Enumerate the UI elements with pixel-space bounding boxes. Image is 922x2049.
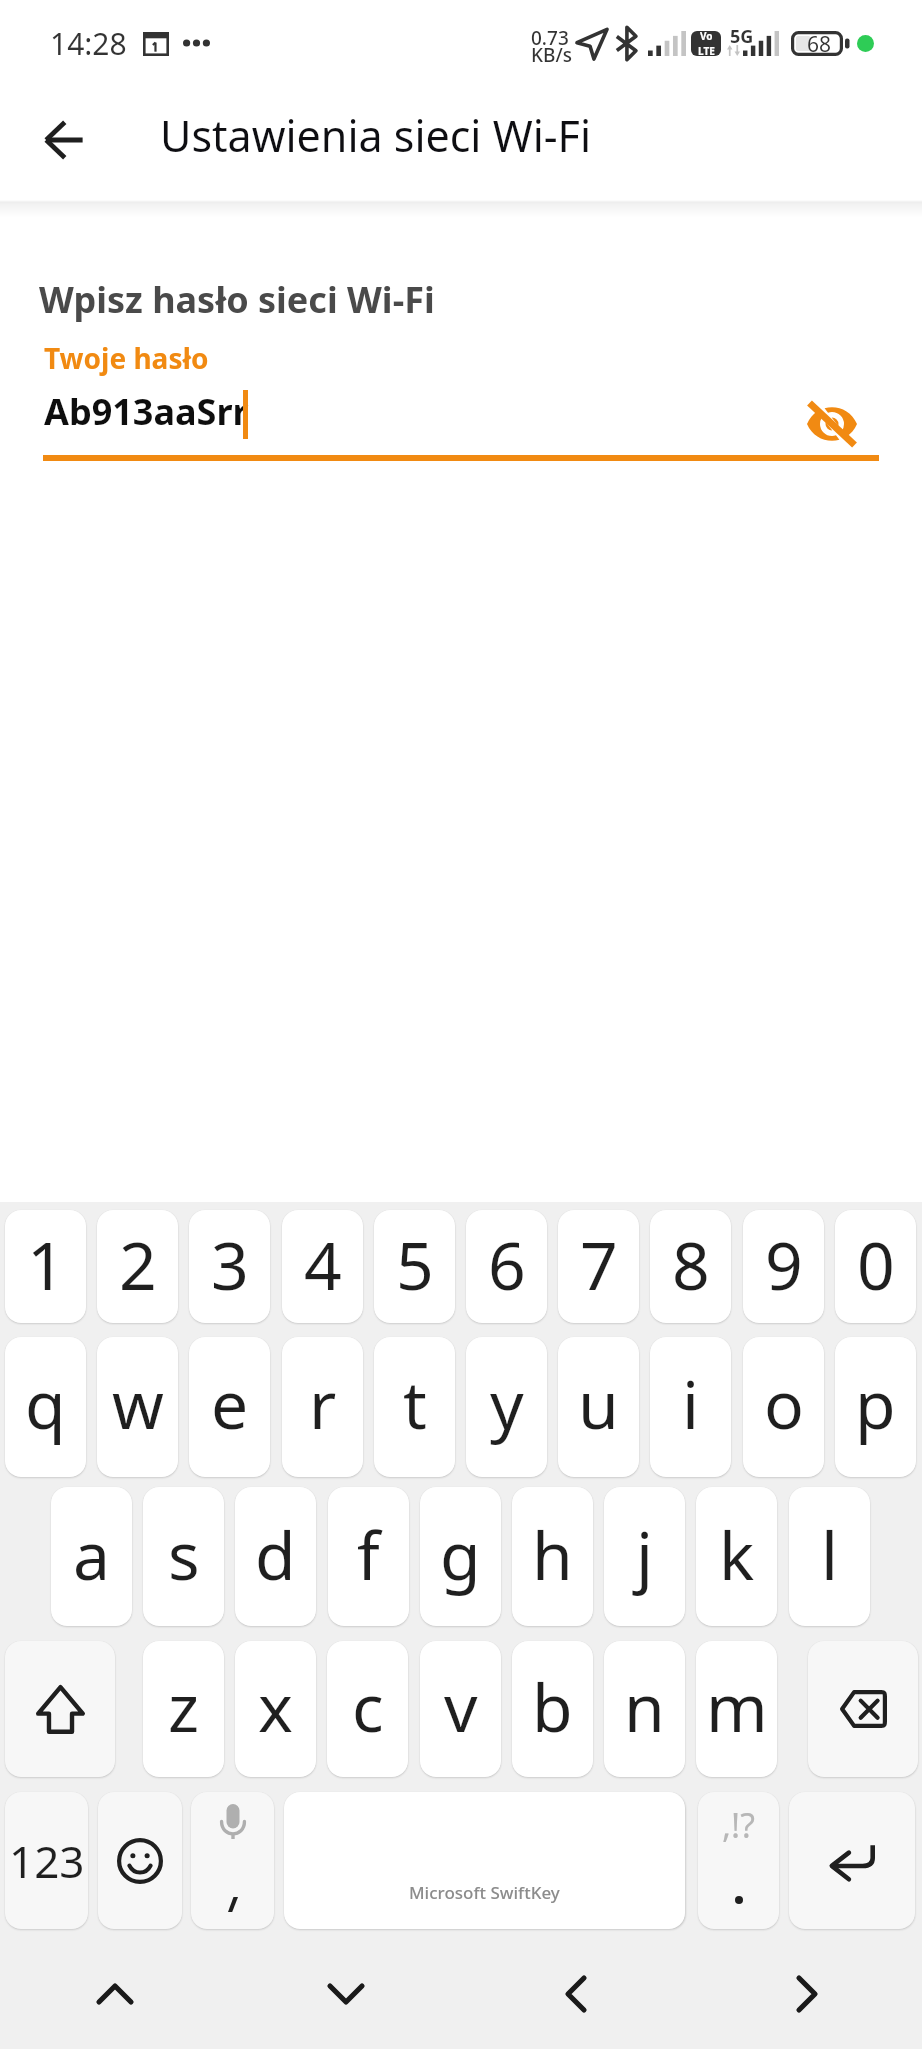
staticText: c	[352, 1661, 384, 1751]
staticText: s	[168, 1509, 200, 1599]
staticText: Twoje hasło	[44, 339, 209, 377]
button[interactable]: Hide password	[792, 394, 872, 454]
staticText: a	[73, 1509, 111, 1599]
button[interactable]: 7	[558, 1210, 639, 1323]
staticText: k	[719, 1509, 755, 1599]
staticText: 4	[304, 1219, 342, 1309]
staticText: 0	[857, 1219, 895, 1309]
button[interactable]: 9	[743, 1210, 824, 1323]
button[interactable]: Shift	[5, 1641, 115, 1777]
staticText: 9	[765, 1219, 803, 1309]
staticText: w	[112, 1358, 164, 1448]
button[interactable]: 3	[189, 1210, 270, 1323]
staticText: KB/s	[531, 42, 572, 68]
staticText: f	[357, 1509, 380, 1599]
button[interactable]: Scroll down	[298, 1931, 394, 2049]
staticText: 68	[807, 30, 832, 59]
button[interactable]: Space	[284, 1792, 685, 1929]
button[interactable]: 4	[282, 1210, 363, 1323]
button[interactable]: 2	[97, 1210, 178, 1323]
staticText: b	[532, 1661, 573, 1751]
staticText: n	[624, 1661, 665, 1751]
staticText: 14:28	[50, 23, 127, 64]
button[interactable]: x	[235, 1641, 316, 1777]
staticText: 2	[119, 1219, 157, 1309]
button[interactable]: d	[235, 1487, 316, 1626]
staticText: Ustawienia sieci Wi-Fi	[160, 106, 591, 165]
staticText: o	[764, 1358, 804, 1448]
staticText: q	[25, 1358, 66, 1448]
button[interactable]: m	[696, 1641, 777, 1777]
staticText: t	[403, 1358, 427, 1448]
button[interactable]: g	[420, 1487, 501, 1626]
staticText: 3	[211, 1219, 249, 1309]
staticText: l	[821, 1509, 839, 1599]
button[interactable]: Period	[698, 1792, 779, 1929]
button[interactable]: Backspace	[808, 1641, 918, 1777]
button[interactable]: Scroll up	[67, 1931, 163, 2049]
staticText: j	[636, 1509, 654, 1599]
staticText: Microsoft SwiftKey	[409, 1881, 560, 1904]
button[interactable]: i	[650, 1337, 731, 1477]
staticText: 7	[580, 1219, 618, 1309]
staticText: Wpisz hasło sieci Wi-Fi	[39, 275, 435, 324]
button[interactable]: z	[143, 1641, 224, 1777]
button[interactable]: p	[835, 1337, 916, 1477]
button[interactable]: o	[743, 1337, 824, 1477]
staticText: i	[682, 1358, 700, 1448]
button[interactable]: a	[51, 1487, 132, 1626]
button[interactable]: Move right	[759, 1931, 855, 2049]
staticText: x	[258, 1661, 293, 1751]
staticText: 0.73	[531, 25, 569, 51]
button[interactable]: y	[466, 1337, 547, 1477]
button[interactable]: 5	[374, 1210, 455, 1323]
button[interactable]: u	[558, 1337, 639, 1477]
button[interactable]: q	[5, 1337, 86, 1477]
button[interactable]: v	[420, 1641, 501, 1777]
staticText: y	[490, 1358, 524, 1448]
button[interactable]: r	[282, 1337, 363, 1477]
button[interactable]: 0	[835, 1210, 916, 1323]
button[interactable]: j	[604, 1487, 685, 1626]
staticText: e	[211, 1358, 249, 1448]
button[interactable]: s	[143, 1487, 224, 1626]
button[interactable]: e	[189, 1337, 270, 1477]
staticText: LTE	[698, 44, 715, 56]
button[interactable]: n	[604, 1641, 685, 1777]
button[interactable]: l	[789, 1487, 870, 1626]
staticText: z	[168, 1661, 200, 1751]
staticText: Ab913aaSrr	[44, 387, 249, 436]
button[interactable]: t	[374, 1337, 455, 1477]
staticText: 5G	[730, 24, 754, 49]
button[interactable]: Voice input	[191, 1792, 274, 1929]
button[interactable]: 8	[650, 1210, 731, 1323]
button[interactable]: c	[327, 1641, 408, 1777]
button[interactable]: h	[512, 1487, 593, 1626]
button[interactable]: w	[97, 1337, 178, 1477]
button[interactable]: Move left	[528, 1931, 624, 2049]
staticText: d	[255, 1509, 296, 1599]
staticText: 123	[9, 1831, 85, 1891]
staticText: 1	[27, 1219, 65, 1309]
staticText: p	[855, 1358, 896, 1448]
button[interactable]: Back	[28, 104, 100, 176]
button[interactable]: f	[328, 1487, 409, 1626]
staticText: 6	[488, 1219, 526, 1309]
button[interactable]: Symbols	[5, 1792, 88, 1929]
button[interactable]: k	[696, 1487, 777, 1626]
staticText: Vo	[700, 31, 713, 43]
staticText: u	[578, 1358, 619, 1448]
button[interactable]: Enter	[789, 1792, 915, 1929]
staticText: m	[706, 1661, 768, 1751]
staticText: 8	[672, 1219, 710, 1309]
staticText: h	[532, 1509, 573, 1599]
button[interactable]: Emoji	[98, 1792, 182, 1929]
button[interactable]: 6	[466, 1210, 547, 1323]
staticText: g	[440, 1509, 481, 1599]
button[interactable]: b	[512, 1641, 593, 1777]
staticText: 5	[396, 1219, 434, 1309]
button[interactable]: 1	[5, 1210, 86, 1323]
staticText: ,!?	[722, 1802, 756, 1848]
staticText: v	[444, 1661, 478, 1751]
staticText: r	[309, 1358, 337, 1448]
